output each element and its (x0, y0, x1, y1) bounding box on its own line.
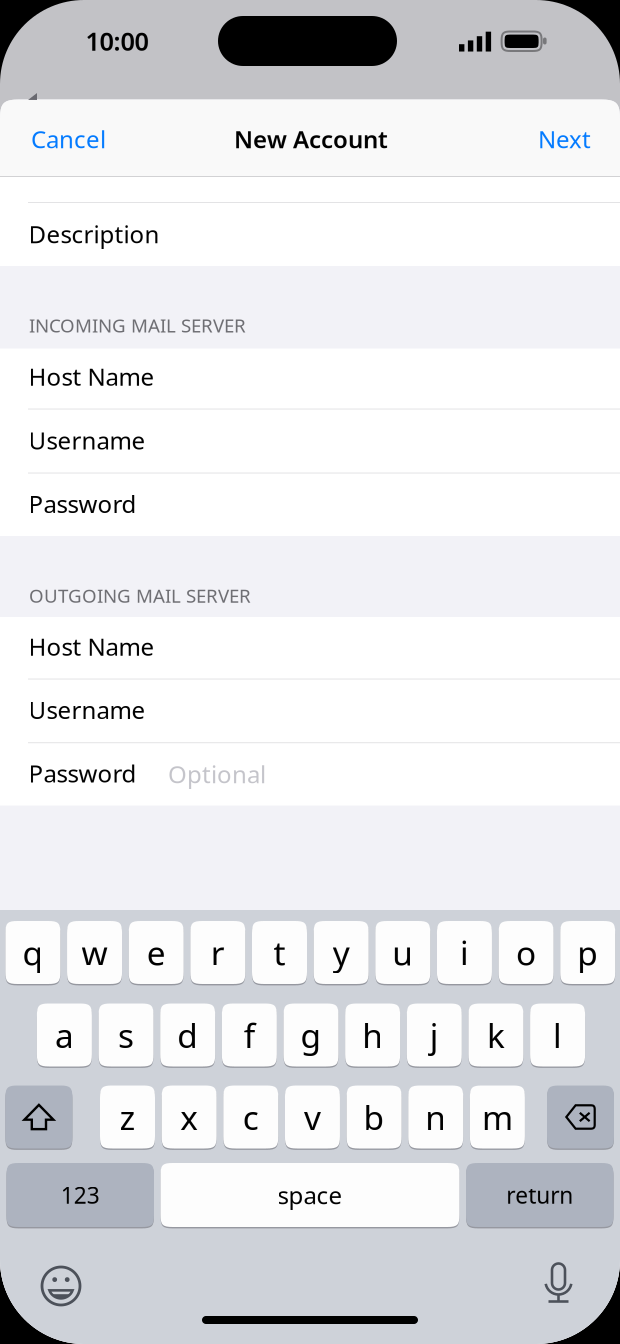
staticText: Username (28, 694, 145, 726)
button[interactable]: Cancel (0, 108, 149, 170)
staticText: return (506, 1180, 573, 1210)
button[interactable]: Shift (0, 0, 620, 1344)
staticText: c (243, 1095, 259, 1139)
button[interactable]: f (0, 0, 620, 1344)
button[interactable]: n (0, 0, 620, 1344)
staticText: i (460, 930, 469, 975)
staticText: New Account (234, 123, 388, 155)
staticText: g (300, 1013, 321, 1057)
button[interactable]: 123 (0, 0, 620, 1344)
staticText: space (277, 1179, 342, 1211)
button[interactable]: Next (473, 108, 620, 170)
staticText: p (577, 930, 598, 975)
staticText: Password (28, 757, 136, 789)
button[interactable]: e (0, 0, 620, 1344)
button[interactable]: w (0, 0, 620, 1344)
button[interactable]: s (0, 0, 620, 1344)
staticText: q (22, 930, 43, 975)
staticText: w (81, 930, 107, 975)
staticText: v (304, 1095, 321, 1139)
staticText: s (118, 1013, 134, 1057)
staticText: OUTGOING MAIL SERVER (29, 583, 251, 608)
button[interactable]: Username (0, 409, 620, 471)
staticText: a (55, 1013, 74, 1057)
button[interactable]: c (0, 0, 620, 1344)
staticText: INCOMING MAIL SERVER (29, 313, 246, 338)
staticText: k (487, 1013, 505, 1057)
button[interactable]: space (0, 0, 620, 1344)
button[interactable]: y (0, 0, 620, 1344)
button[interactable]: k (0, 0, 620, 1344)
button[interactable]: o (0, 0, 620, 1344)
staticText: y (333, 930, 350, 975)
button[interactable]: Username (0, 679, 620, 741)
button[interactable]: l (0, 0, 620, 1344)
staticText: x (180, 1095, 198, 1139)
button[interactable]: v (0, 0, 620, 1344)
button[interactable]: t (0, 0, 620, 1344)
staticText: Host Name (28, 631, 154, 662)
staticText: Password (28, 488, 136, 520)
staticText: h (362, 1013, 383, 1057)
button[interactable]: b (0, 0, 620, 1344)
staticText: Host Name (28, 361, 154, 392)
staticText: Cancel (31, 123, 106, 155)
staticText: f (244, 1013, 255, 1057)
staticText: Next (538, 123, 591, 155)
button[interactable]: i (0, 0, 620, 1344)
button[interactable]: d (0, 0, 620, 1344)
button[interactable]: q (0, 0, 620, 1344)
staticText: n (425, 1095, 446, 1139)
staticText: o (516, 930, 536, 975)
button[interactable]: r (0, 0, 620, 1344)
staticText: z (119, 1095, 135, 1139)
button[interactable]: j (0, 0, 620, 1344)
button[interactable]: p (0, 0, 620, 1344)
button[interactable]: a (0, 0, 620, 1344)
staticText: b (364, 1095, 385, 1139)
staticText: l (553, 1013, 562, 1057)
staticText: m (482, 1095, 513, 1139)
staticText: j (430, 1013, 439, 1057)
button[interactable]: Password (0, 742, 620, 804)
button[interactable]: Host Name (0, 615, 620, 677)
staticText: u (392, 930, 413, 975)
button[interactable]: x (0, 0, 620, 1344)
staticText: Optional (168, 758, 266, 790)
staticText: r (211, 930, 225, 975)
button[interactable]: u (0, 0, 620, 1344)
button[interactable]: Dictation (542, 1262, 574, 1306)
button[interactable]: g (0, 0, 620, 1344)
button[interactable]: Emoji keyboard (39, 1264, 83, 1308)
button[interactable]: z (0, 0, 620, 1344)
button[interactable]: h (0, 0, 620, 1344)
button[interactable]: m (0, 0, 620, 1344)
button[interactable]: Delete (0, 0, 620, 1344)
button[interactable]: Password (0, 473, 620, 535)
staticText: 123 (61, 1180, 100, 1210)
button[interactable]: return (0, 0, 620, 1344)
button[interactable]: Host Name (0, 345, 620, 407)
staticText: 10:00 (85, 24, 148, 58)
staticText: Description (28, 218, 159, 250)
staticText: d (177, 1013, 198, 1057)
staticText: e (147, 930, 166, 975)
staticText: t (273, 930, 285, 975)
staticText: Username (28, 424, 145, 456)
button[interactable]: Description (0, 203, 620, 265)
